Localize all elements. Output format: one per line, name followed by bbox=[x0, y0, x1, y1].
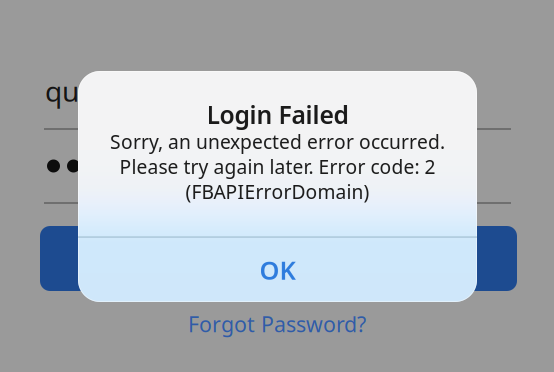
staticText: Forgot Password? bbox=[188, 309, 366, 339]
staticText: (FBAPIErrorDomain) bbox=[185, 178, 369, 205]
staticText: OK bbox=[259, 253, 295, 287]
staticText: Please try again later. Error code: 2 bbox=[119, 153, 435, 180]
button[interactable]: Forgot Password? bbox=[188, 309, 366, 339]
button[interactable]: Sign in bbox=[40, 226, 517, 291]
staticText: Login Failed bbox=[206, 98, 348, 131]
staticText: queen bbox=[45, 72, 128, 110]
button[interactable]: OK bbox=[78, 237, 477, 302]
staticText: Sorry, an unexpected error occurred. bbox=[110, 128, 445, 155]
